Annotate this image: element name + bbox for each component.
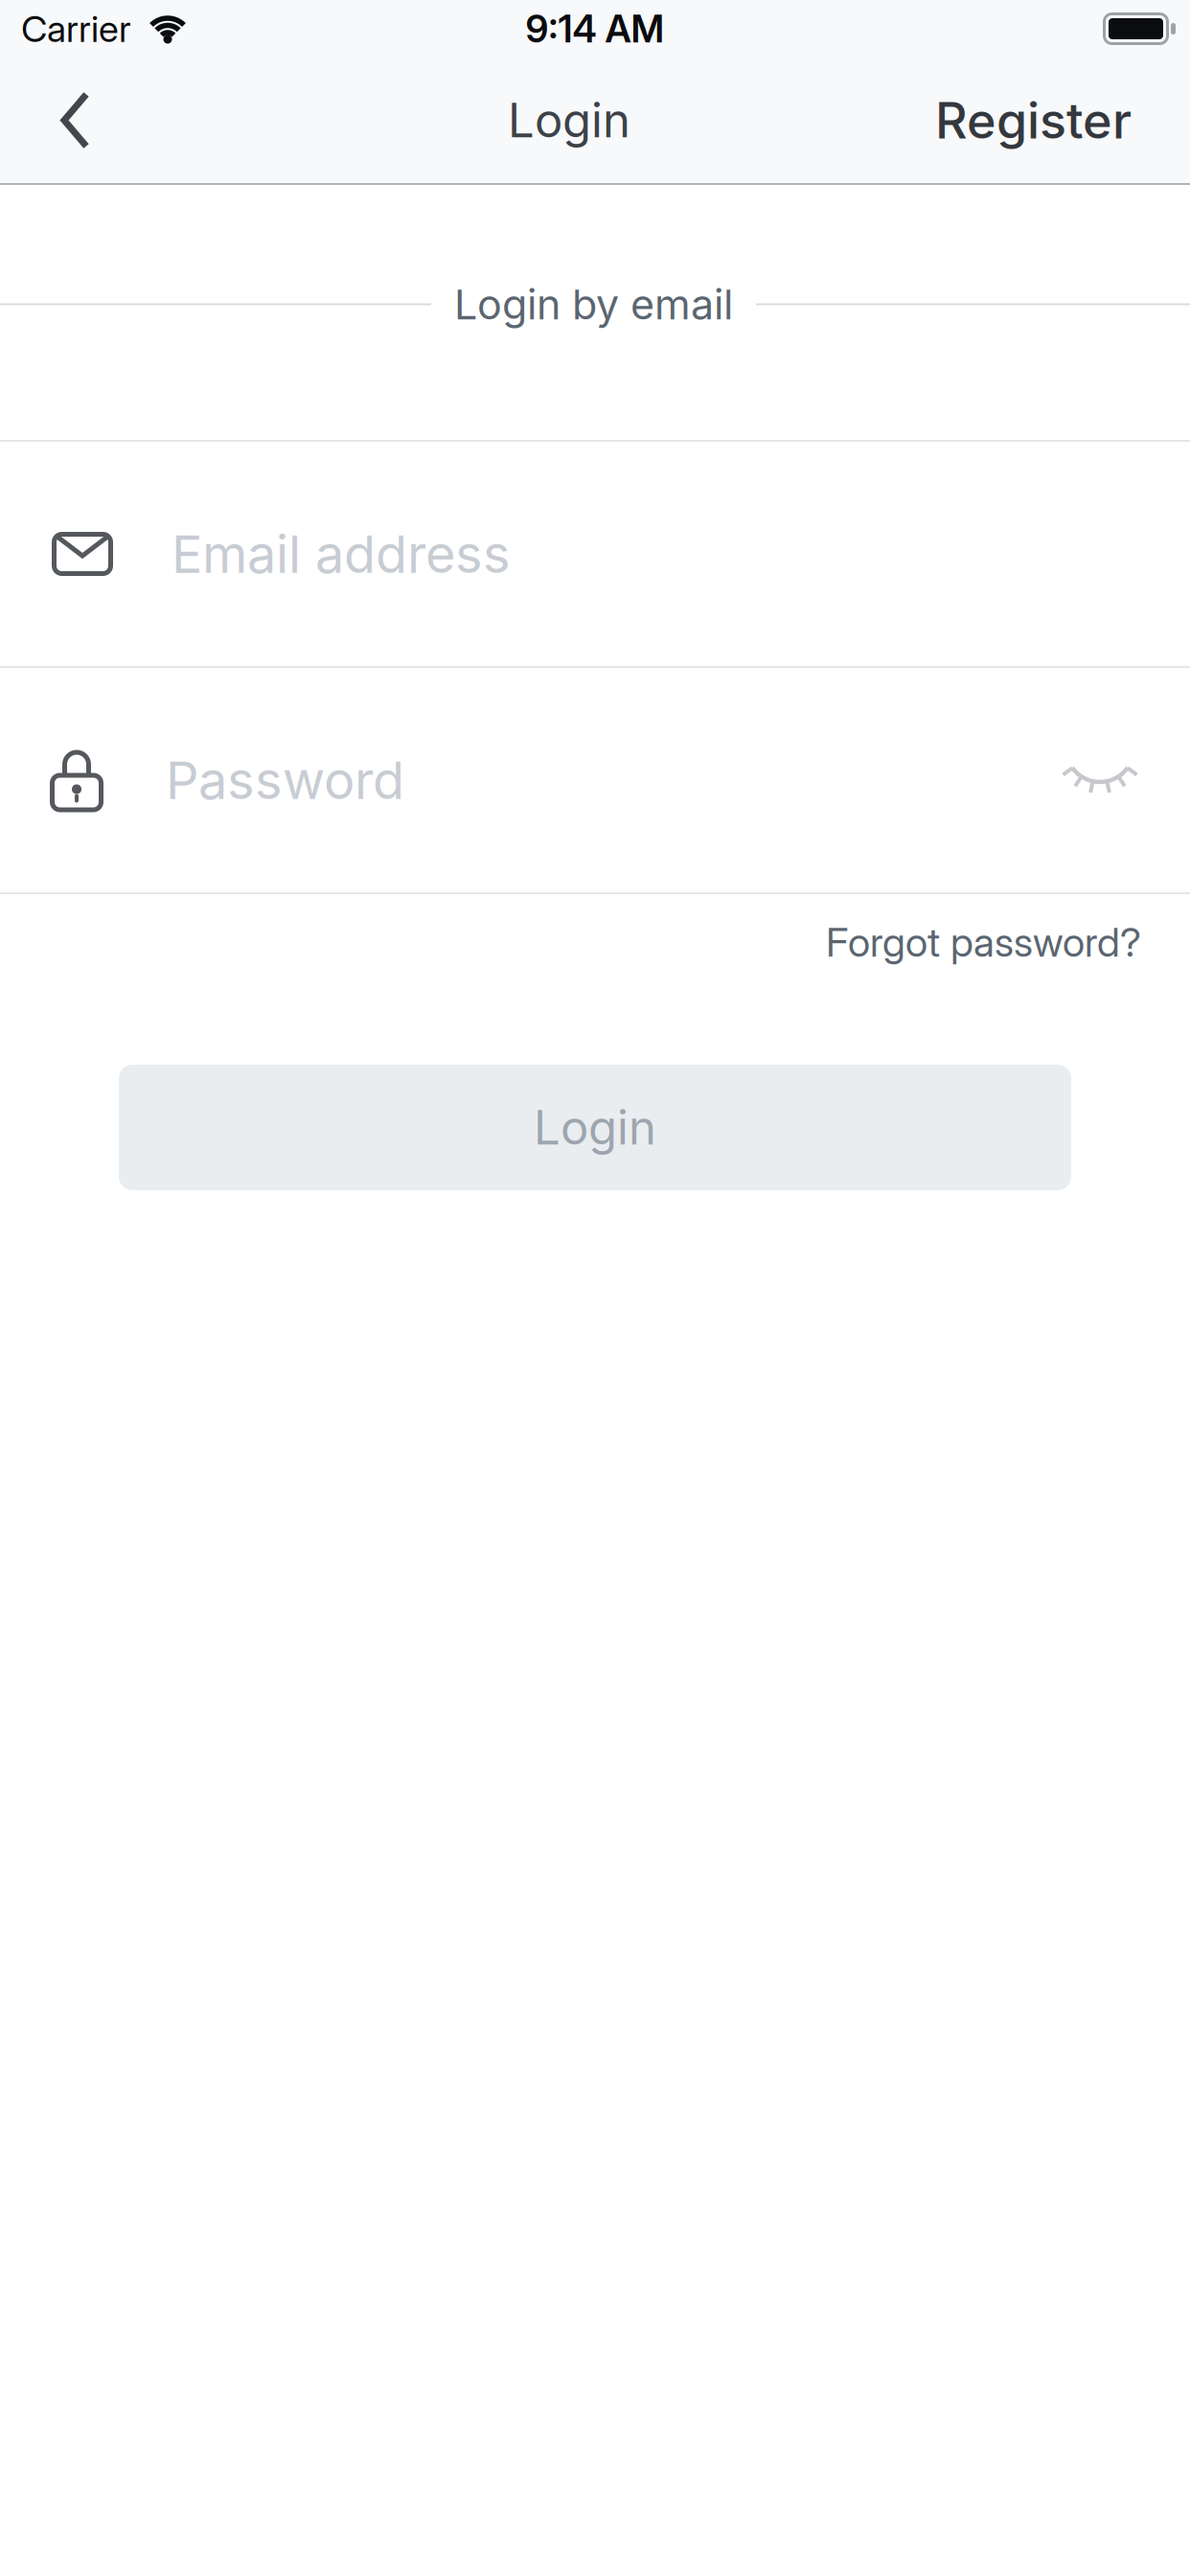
button[interactable]: Show password: [1057, 756, 1143, 804]
button[interactable]: Forgot password?: [826, 918, 1141, 966]
button[interactable]: Register: [906, 71, 1190, 170]
staticText: Login: [534, 1099, 656, 1156]
staticText: Forgot password?: [826, 918, 1141, 966]
button[interactable]: Back: [0, 72, 119, 168]
staticText: Register: [935, 90, 1132, 150]
staticText: Carrier: [21, 7, 131, 51]
staticText: Login: [508, 92, 630, 149]
staticText: 9:14 AM: [526, 6, 664, 51]
button[interactable]: Login: [119, 1065, 1071, 1190]
staticText: Login by email: [454, 279, 733, 329]
staticText: Email address: [172, 523, 511, 585]
staticText: Password: [166, 749, 404, 811]
